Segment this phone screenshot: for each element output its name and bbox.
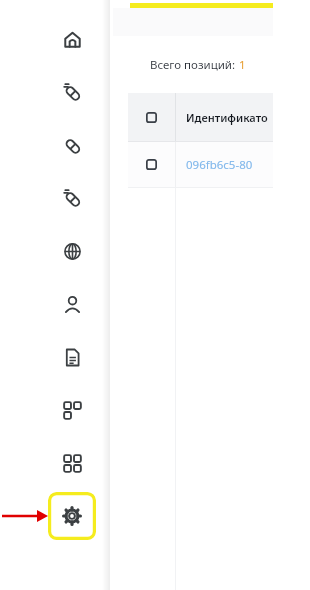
staticText: Идентификато — [186, 110, 268, 125]
button[interactable]: Medications with dose — [50, 70, 94, 114]
button[interactable]: Select row — [128, 142, 273, 187]
button[interactable]: Profile — [50, 282, 94, 326]
button[interactable]: Web — [50, 229, 94, 273]
button[interactable]: Select all — [128, 93, 175, 141]
button[interactable]: Apps — [50, 441, 94, 485]
staticText: Всего позиций: — [150, 57, 239, 73]
button[interactable]: Documents — [50, 335, 94, 379]
staticText: 1 — [239, 57, 246, 73]
button[interactable]: Prescriptions — [50, 176, 94, 220]
staticText: 096fb6c5-80 — [186, 157, 253, 173]
button[interactable]: Settings — [48, 492, 96, 540]
button[interactable]: Medications — [50, 123, 94, 167]
button[interactable]: Select row — [128, 142, 175, 187]
button[interactable]: Modules — [50, 388, 94, 432]
button[interactable]: Home — [50, 17, 94, 61]
